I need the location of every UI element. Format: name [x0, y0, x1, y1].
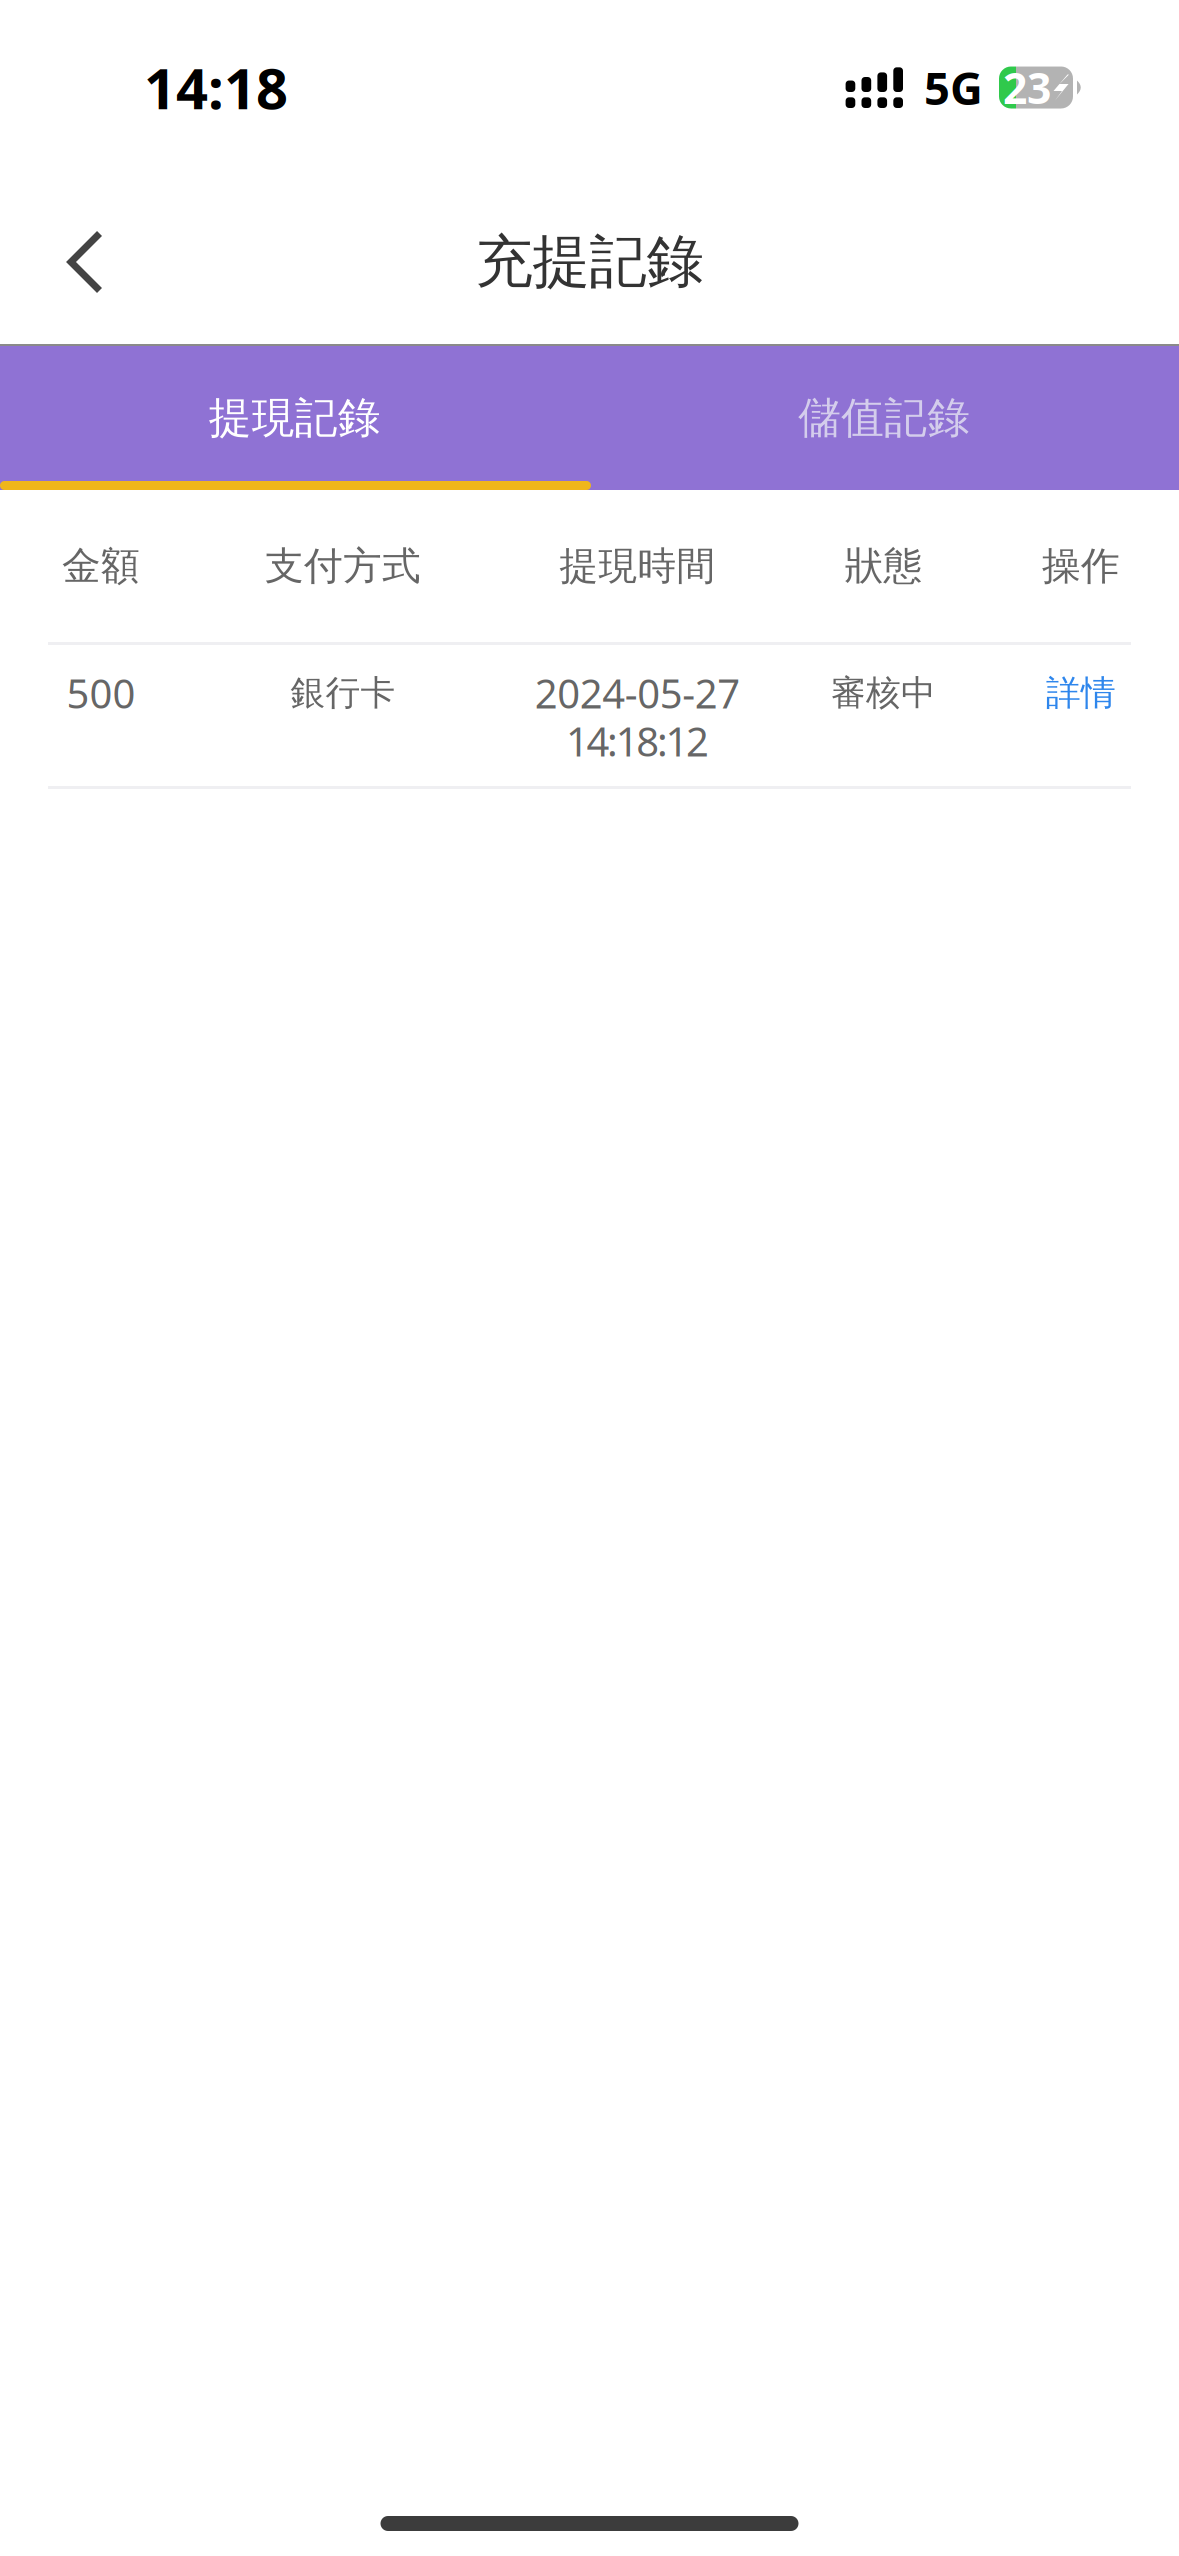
staticText: 操作 [1042, 542, 1120, 590]
button[interactable]: 提現記錄 [0, 346, 589, 490]
staticText: 儲值記錄 [798, 392, 970, 444]
staticText: 支付方式 [265, 542, 421, 590]
staticText: 14:18 [144, 50, 288, 125]
staticText: 14:18:12 [566, 714, 709, 767]
staticText: 詳情 [1046, 672, 1116, 714]
staticText: 500 [66, 666, 135, 719]
staticText: 5G [924, 57, 983, 118]
staticText: 銀行卡 [290, 672, 395, 714]
button[interactable]: Back [0, 196, 140, 328]
staticText: 狀態 [844, 542, 922, 590]
button[interactable]: 詳情 [976, 669, 1179, 717]
staticText: 充提記錄 [475, 227, 703, 297]
staticText: 金額 [62, 542, 140, 590]
staticText: 提現時間 [559, 542, 715, 590]
button[interactable]: 儲值記錄 [589, 346, 1179, 490]
staticText: 審核中 [831, 672, 936, 714]
staticText: 23 [1003, 59, 1051, 116]
staticText: 2024-05-27 [535, 666, 740, 719]
staticText: 提現記錄 [209, 392, 381, 444]
